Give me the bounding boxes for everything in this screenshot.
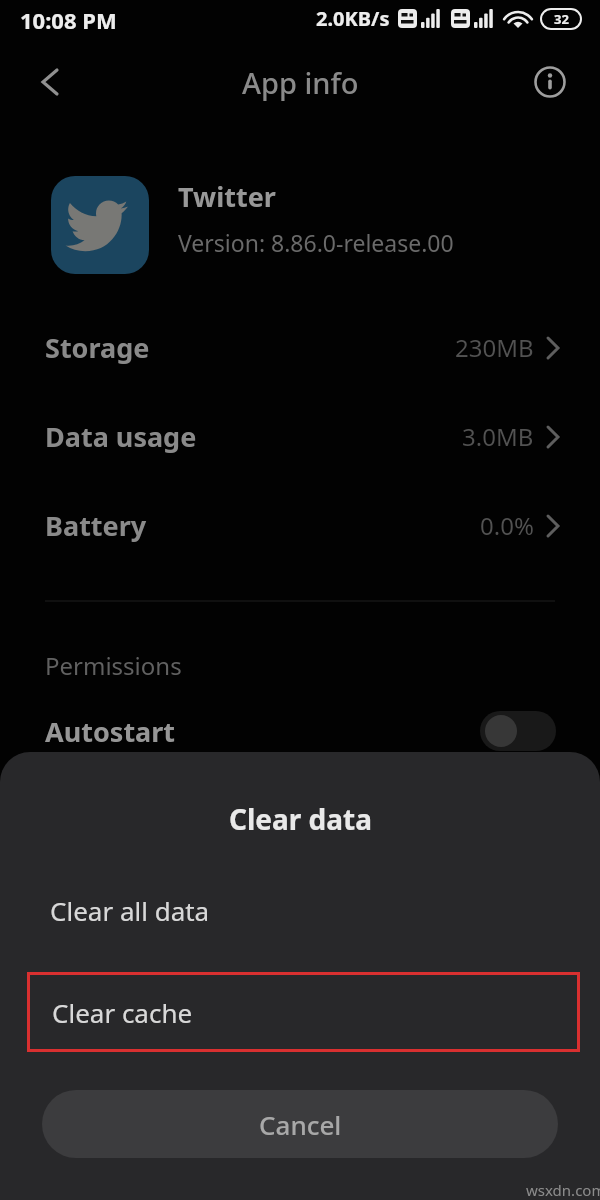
- staticText: 2.0KB/s: [316, 5, 390, 32]
- staticText: 32: [554, 10, 569, 28]
- staticText: wsxdn.com: [526, 1180, 600, 1200]
- staticText: 10:08 PM: [20, 5, 117, 35]
- staticText: Data usage: [45, 418, 197, 455]
- button[interactable]: Clear all data: [0, 870, 600, 950]
- staticText: 230MB: [455, 331, 534, 364]
- button[interactable]: [28, 60, 72, 104]
- button[interactable]: Battery: [0, 481, 600, 570]
- button[interactable]: Cancel: [42, 1090, 558, 1158]
- button[interactable]: [480, 711, 556, 751]
- staticText: Permissions: [45, 649, 182, 682]
- button[interactable]: Clear cache: [27, 972, 580, 1052]
- staticText: Twitter: [178, 178, 276, 215]
- button[interactable]: Autostart: [0, 690, 600, 772]
- button[interactable]: [532, 64, 568, 100]
- staticText: Version: 8.86.0-release.00: [178, 227, 454, 258]
- staticText: Autostart: [45, 713, 176, 750]
- staticText: Battery: [45, 507, 147, 544]
- staticText: Clear data: [229, 800, 372, 838]
- staticText: 0.0%: [480, 509, 534, 542]
- staticText: Cancel: [259, 1107, 342, 1142]
- staticText: Clear all data: [50, 893, 210, 928]
- staticText: Clear cache: [52, 995, 193, 1030]
- staticText: App info: [242, 63, 359, 102]
- staticText: Storage: [45, 329, 150, 366]
- button[interactable]: Storage: [0, 303, 600, 392]
- button[interactable]: Data usage: [0, 392, 600, 481]
- staticText: 3.0MB: [462, 420, 534, 453]
